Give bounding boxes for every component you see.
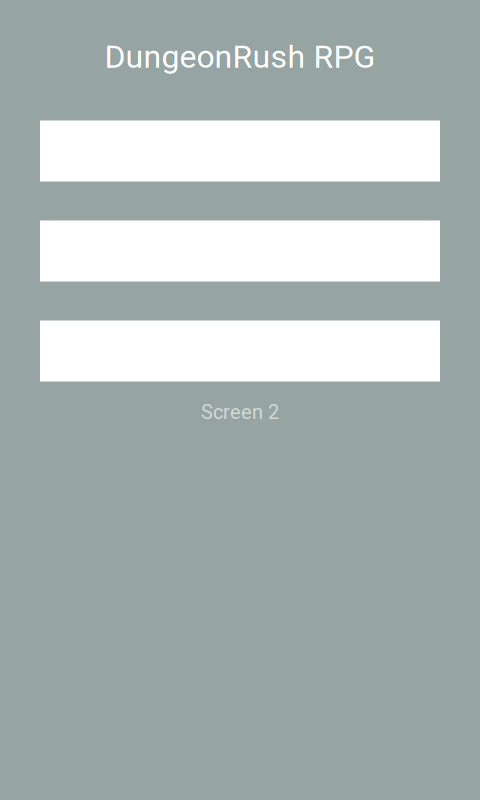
button[interactable]: Option 2: [40, 220, 440, 281]
staticText: Screen 2: [201, 400, 279, 424]
staticText: DungeonRush RPG: [104, 38, 375, 75]
button[interactable]: Option 3: [40, 320, 440, 381]
button[interactable]: Option 1: [40, 120, 440, 181]
